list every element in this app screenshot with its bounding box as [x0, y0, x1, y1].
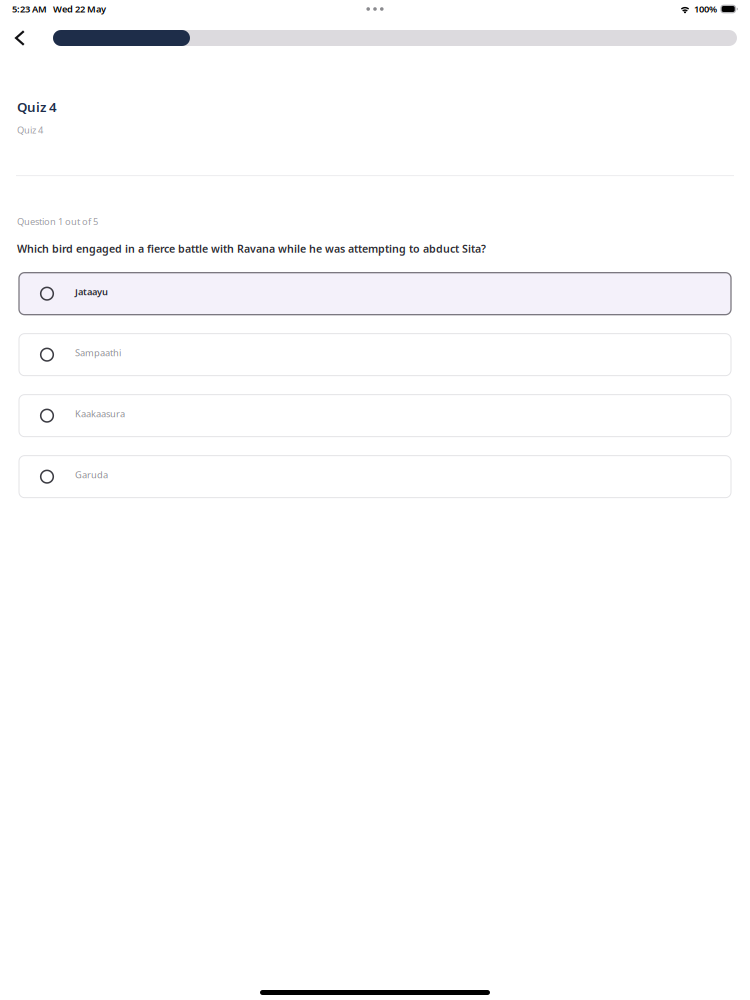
- staticText: Question 1 out of 5: [17, 215, 98, 227]
- button[interactable]: Garuda: [19, 456, 731, 498]
- staticText: Quiz 4: [17, 98, 57, 116]
- staticText: Which bird engaged in a fierce battle wi…: [17, 241, 486, 256]
- staticText: Garuda: [75, 468, 108, 481]
- staticText: 100%: [694, 3, 717, 15]
- staticText: 5:23 AM Wed 22 May: [12, 3, 106, 15]
- button[interactable]: Back: [0, 25, 40, 51]
- staticText: Kaakaasura: [75, 407, 125, 420]
- staticText: Sampaathi: [75, 346, 121, 359]
- button[interactable]: Kaakaasura: [19, 395, 731, 437]
- button[interactable]: Sampaathi: [19, 334, 731, 376]
- button[interactable]: Jataayu: [19, 273, 731, 315]
- staticText: Jataayu: [75, 285, 108, 298]
- staticText: Quiz 4: [17, 124, 43, 136]
